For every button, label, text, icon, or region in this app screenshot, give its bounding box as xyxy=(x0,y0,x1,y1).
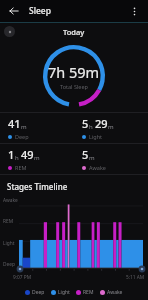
button[interactable]: Awake xyxy=(100,289,123,296)
staticText: 7h 59m xyxy=(48,62,100,82)
staticText: h xyxy=(89,123,93,131)
button[interactable]: Deep xyxy=(25,289,45,296)
button[interactable]: 5 xyxy=(74,144,148,174)
button[interactable]: Previous day xyxy=(4,26,15,37)
staticText: Stages Timeline xyxy=(7,181,68,192)
staticText: Light xyxy=(89,133,103,140)
button[interactable]: Back xyxy=(5,2,23,20)
button[interactable]: 41 xyxy=(0,113,74,143)
staticText: Light xyxy=(58,289,70,296)
staticText: m xyxy=(34,154,40,162)
staticText: Today xyxy=(63,27,85,37)
staticText: 5 xyxy=(82,116,89,131)
staticText: m xyxy=(108,123,114,131)
staticText: h xyxy=(15,154,19,162)
staticText: m xyxy=(89,154,95,162)
staticText: Deep xyxy=(3,261,15,268)
staticText: 5 xyxy=(82,147,89,162)
staticText: Total Sleep xyxy=(60,83,88,90)
staticText: Sleep xyxy=(29,5,51,17)
staticText: REM xyxy=(83,289,94,296)
staticText: Deep xyxy=(15,133,29,140)
staticText: Awake xyxy=(89,164,106,171)
button[interactable]: 5 xyxy=(74,113,148,143)
staticText: Deep xyxy=(32,289,45,296)
staticText: REM xyxy=(3,218,14,225)
staticText: 49 xyxy=(21,147,34,162)
staticText: Awake xyxy=(3,197,18,204)
staticText: m xyxy=(21,123,27,131)
staticText: Awake xyxy=(107,289,123,296)
staticText: 9:07 PM xyxy=(13,274,32,281)
staticText: REM xyxy=(15,164,27,171)
staticText: 41 xyxy=(8,116,21,131)
button[interactable]: REM xyxy=(76,289,94,296)
staticText: 5:11 AM xyxy=(126,274,145,281)
staticText: 1 xyxy=(8,147,15,162)
staticText: 29 xyxy=(95,116,108,131)
button[interactable]: Light xyxy=(51,289,70,296)
button[interactable]: More options xyxy=(125,2,143,20)
staticText: Light xyxy=(3,240,15,247)
button[interactable]: 1 xyxy=(0,144,74,174)
